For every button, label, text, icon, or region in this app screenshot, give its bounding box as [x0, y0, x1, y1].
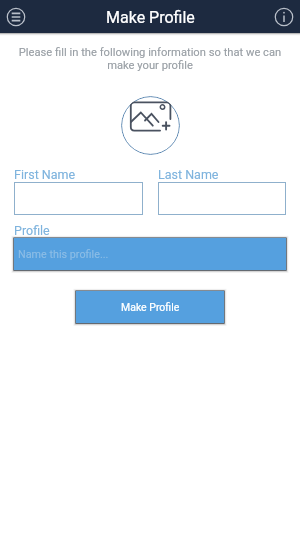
- staticText: Make Profile: [106, 8, 195, 27]
- button[interactable]: Make Profile: [76, 291, 224, 323]
- button[interactable]: Name this profile...: [14, 238, 286, 270]
- button[interactable]: Info: [271, 4, 297, 30]
- staticText: Please fill in the following information…: [10, 46, 290, 72]
- staticText: Make Profile: [121, 301, 180, 313]
- button[interactable]: [158, 182, 286, 215]
- staticText: Last Name: [158, 167, 219, 182]
- button[interactable]: Add profile photo: [121, 96, 180, 155]
- button[interactable]: Menu: [3, 4, 29, 30]
- staticText: Profile: [14, 223, 50, 238]
- staticText: Name this profile...: [18, 248, 109, 261]
- staticText: First Name: [14, 167, 76, 182]
- button[interactable]: [14, 182, 143, 215]
